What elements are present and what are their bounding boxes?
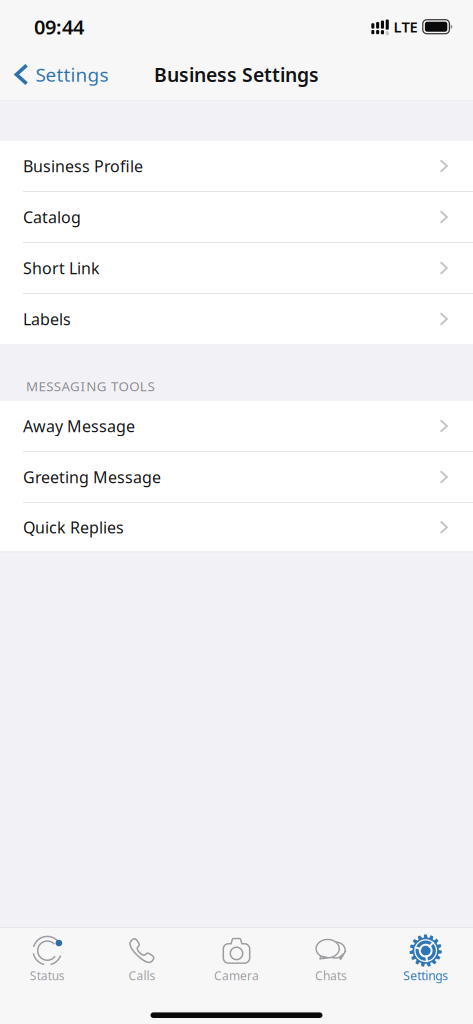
staticText: Business Settings: [154, 61, 319, 88]
staticText: Chats: [315, 968, 347, 983]
staticText: Away Message: [23, 415, 135, 437]
staticText: Business Profile: [23, 155, 143, 177]
button[interactable]: Settings: [0, 49, 120, 100]
button[interactable]: Short Link: [0, 243, 473, 293]
button[interactable]: Chats: [284, 934, 378, 986]
button[interactable]: Catalog: [0, 192, 473, 242]
button[interactable]: Greeting Message: [0, 452, 473, 502]
staticText: Short Link: [23, 257, 100, 279]
button[interactable]: Business Profile: [0, 141, 473, 191]
staticText: 09:44: [34, 13, 84, 40]
staticText: Status: [30, 968, 65, 983]
button[interactable]: Labels: [0, 294, 473, 344]
staticText: Catalog: [23, 206, 81, 228]
button[interactable]: Calls: [95, 934, 189, 986]
staticText: MESSAGING TOOLS: [26, 377, 154, 395]
staticText: Quick Replies: [23, 517, 124, 538]
staticText: Settings: [35, 62, 108, 87]
staticText: Settings: [403, 968, 448, 983]
button[interactable]: Settings: [378, 934, 473, 986]
staticText: Greeting Message: [23, 466, 161, 488]
button[interactable]: Away Message: [0, 401, 473, 451]
staticText: LTE: [393, 17, 417, 36]
staticText: Labels: [23, 308, 71, 330]
button[interactable]: Camera: [189, 934, 284, 986]
staticText: Camera: [214, 968, 259, 983]
button[interactable]: Quick Replies: [0, 503, 473, 551]
button[interactable]: Status: [0, 934, 95, 986]
staticText: Calls: [128, 968, 155, 983]
